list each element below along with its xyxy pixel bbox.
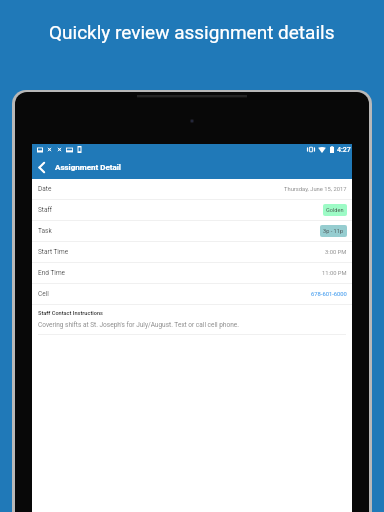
staticText: Task bbox=[38, 227, 52, 235]
staticText: Quickly review assignment details bbox=[49, 21, 335, 43]
button[interactable]: Start Time bbox=[32, 242, 352, 262]
button[interactable]: Date bbox=[32, 179, 352, 199]
staticText: Covering shifts at St. Joseph's for July… bbox=[38, 321, 239, 329]
staticText: Assignment Detail bbox=[55, 163, 121, 172]
staticText: 3:00 PM bbox=[325, 249, 347, 256]
button[interactable]: Task bbox=[32, 221, 352, 241]
staticText: Start Time bbox=[38, 248, 69, 256]
button[interactable]: Back bbox=[32, 155, 50, 179]
staticText: End Time bbox=[38, 269, 66, 277]
staticText: Date bbox=[38, 185, 52, 193]
staticText: Staff Contact Instructions bbox=[38, 310, 103, 317]
button[interactable]: Cell bbox=[32, 284, 352, 304]
staticText: 4:27 bbox=[337, 146, 351, 154]
staticText: Thursday, June 15, 2017 bbox=[284, 186, 347, 193]
staticText: Staff bbox=[38, 206, 53, 214]
button[interactable]: End Time bbox=[32, 263, 352, 283]
staticText: 3p - 11p bbox=[323, 228, 344, 235]
staticText: 678-601-6000 bbox=[311, 291, 347, 298]
staticText: Cell bbox=[38, 290, 49, 298]
button[interactable]: Staff bbox=[32, 200, 352, 220]
staticText: 11:00 PM bbox=[322, 270, 347, 277]
staticText: Golden bbox=[326, 207, 344, 214]
